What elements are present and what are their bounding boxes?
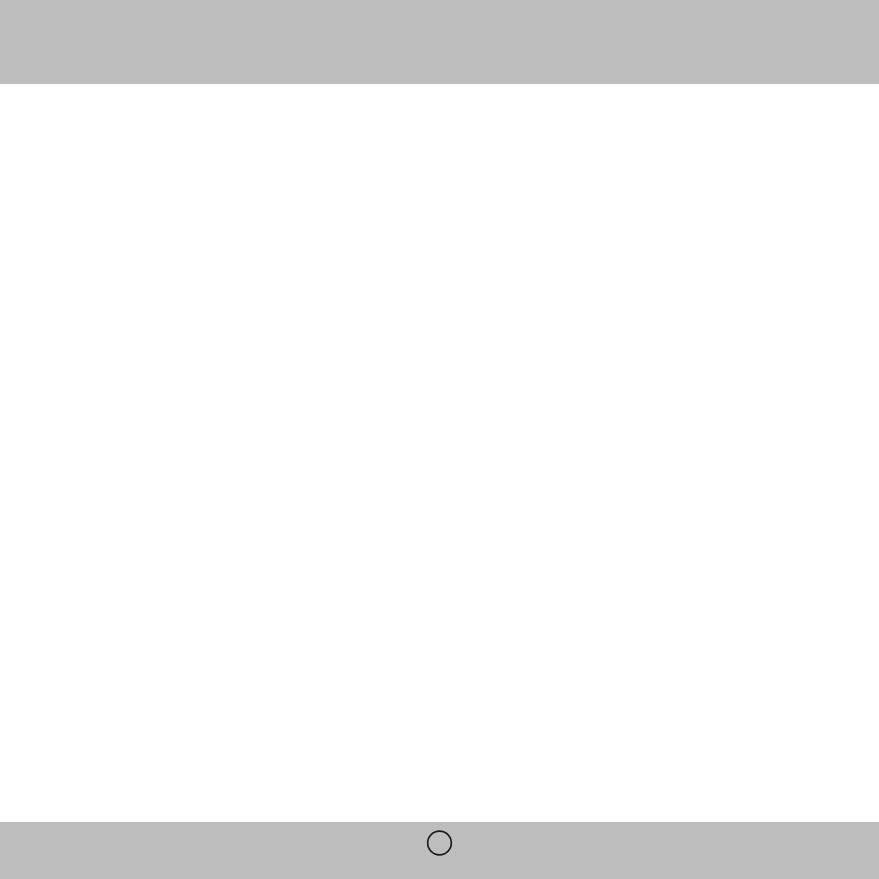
button[interactable]: Record xyxy=(396,822,484,879)
